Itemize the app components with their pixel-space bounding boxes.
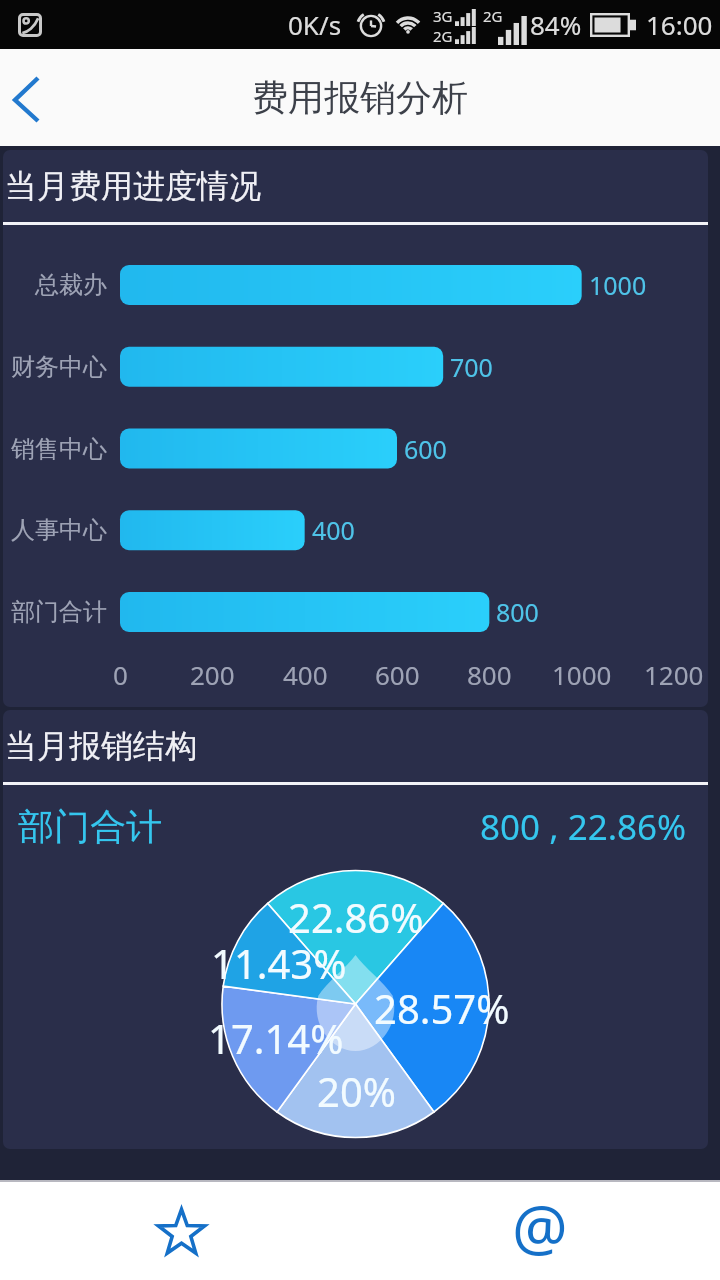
staticText: 20% (317, 1064, 396, 1118)
staticText: 400 (283, 657, 328, 692)
staticText: 0K/s (288, 7, 342, 42)
staticText: 600 (375, 657, 420, 692)
staticText: 22.86% (288, 890, 424, 944)
staticText: 当月费用进度情况 (5, 166, 261, 206)
staticText: 2G (483, 6, 503, 26)
button[interactable]: Back (0, 49, 64, 146)
staticText: 部门合计 (11, 597, 107, 627)
staticText: 800 (467, 657, 512, 692)
staticText: 800 , 22.86% (480, 803, 687, 851)
staticText: 1200 (644, 657, 704, 692)
staticText: 700 (450, 350, 493, 384)
staticText: 17.14% (208, 1011, 344, 1065)
staticText: 200 (190, 657, 235, 692)
staticText: 400 (312, 513, 355, 547)
staticText: 部门合计 (18, 804, 162, 849)
staticText: 3G (433, 6, 453, 26)
staticText: 0 (113, 657, 128, 692)
staticText: @ (512, 1184, 568, 1268)
button[interactable]: Mail (360, 1182, 720, 1280)
staticText: 28.57% (374, 981, 510, 1035)
staticText: 1000 (589, 268, 647, 302)
button[interactable]: Favorites (0, 1182, 360, 1280)
staticText: 销售中心 (11, 434, 107, 464)
staticText: 11.43% (211, 936, 347, 990)
staticText: 1000 (552, 657, 612, 692)
staticText: 16:00 (646, 7, 713, 42)
staticText: 费用报销分析 (252, 75, 468, 120)
staticText: 人事中心 (11, 515, 107, 545)
staticText: 2G (433, 26, 453, 44)
staticText: 财务中心 (11, 352, 107, 382)
staticText: 当月报销结构 (5, 726, 197, 766)
staticText: 600 (404, 432, 447, 466)
staticText: 总裁办 (35, 270, 107, 300)
staticText: 84% (530, 7, 582, 42)
staticText: 800 (496, 595, 539, 629)
